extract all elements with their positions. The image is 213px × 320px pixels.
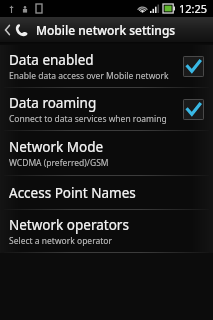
staticText: Select a network operator: [9, 235, 112, 247]
button[interactable]: Data roaming toggle: [180, 96, 207, 123]
button[interactable]: Data roaming: [0, 88, 213, 130]
staticText: Access Point Names: [9, 184, 136, 202]
staticText: Data enabled: [9, 51, 94, 69]
button[interactable]: Network Mode: [0, 131, 213, 175]
staticText: Data roaming: [9, 94, 97, 112]
button[interactable]: Access Point Names: [0, 176, 213, 209]
button[interactable]: Network operators: [0, 210, 213, 252]
button[interactable]: Data enabled: [0, 45, 213, 87]
button[interactable]: Data enabled toggle: [180, 53, 207, 80]
staticText: Network Mode: [9, 138, 104, 156]
button[interactable]: Navigate up: [0, 17, 30, 42]
staticText: Network operators: [9, 216, 129, 234]
staticText: Enable data access over Mobile network: [9, 70, 169, 82]
staticText: Mobile network settings: [36, 22, 176, 38]
staticText: 12:25: [179, 1, 208, 16]
staticText: WCDMA (preferred)/GSM: [9, 157, 109, 169]
staticText: Connect to data services when roaming: [9, 113, 167, 125]
